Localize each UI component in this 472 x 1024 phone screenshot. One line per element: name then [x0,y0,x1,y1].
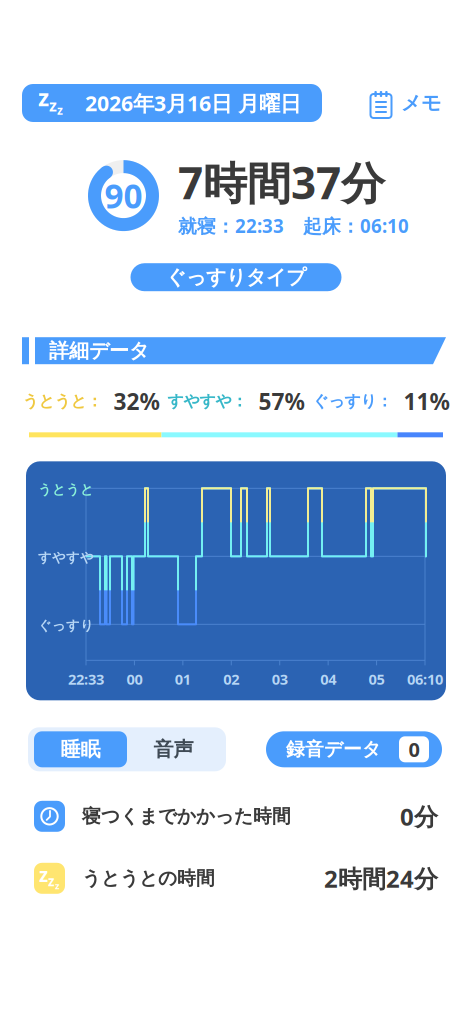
staticText: 01 [175,669,191,689]
button[interactable]: メモ [370,84,441,122]
staticText: 0 [408,736,419,763]
staticText: 03 [272,669,288,689]
staticText: すやすや [38,549,94,566]
button[interactable]: 睡眠 [34,731,127,767]
staticText: うとうと [38,481,94,498]
staticText: 06:10 [407,669,443,689]
button[interactable]: 録音データ [266,731,442,767]
staticText: 2026年3月16日 月曜日 [85,89,301,117]
staticText: 05 [369,669,385,689]
staticText: 32% [113,386,159,416]
staticText: z [49,95,57,116]
staticText: 04 [320,669,336,689]
staticText: 就寝：22:33 起床：06:10 [178,213,409,238]
staticText: 00 [126,669,142,689]
staticText: 02 [223,669,239,689]
staticText: うとうと： [22,391,102,411]
staticText: 寝つくまでかかった時間 [82,805,291,828]
staticText: z [57,102,63,118]
staticText: メモ [401,91,441,115]
staticText: 7時間37分 [178,153,385,211]
staticText: 57% [258,386,304,416]
staticText: z [48,872,55,890]
staticText: すやすや： [167,391,247,411]
staticText: z [55,879,60,892]
button[interactable]: ぐっすりタイプ [130,263,341,291]
staticText: うとうとの時間 [82,867,215,890]
staticText: ぐっすり [38,617,94,634]
staticText: 睡眠 [60,737,100,762]
staticText: 0分 [400,800,438,832]
button[interactable]: z [22,84,322,122]
button[interactable]: 音声 [127,731,220,767]
staticText: 2時間24分 [324,862,438,894]
button[interactable]: 寝つくまでかかった時間 [34,785,438,847]
staticText: 音声 [153,737,193,762]
staticText: 詳細データ [49,338,149,363]
staticText: 90 [104,173,142,218]
staticText: z [39,862,48,887]
staticText: ぐっすり： [312,391,392,411]
staticText: 22:33 [68,669,104,689]
button[interactable]: z [34,847,438,909]
staticText: z [38,82,49,113]
staticText: 11% [403,386,449,416]
staticText: ぐっすりタイプ [166,265,306,289]
staticText: 録音データ [286,738,381,761]
